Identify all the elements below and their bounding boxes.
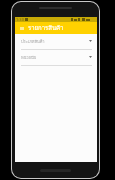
staticText: 1:30 xyxy=(16,17,24,22)
button[interactable]: Menu xyxy=(20,26,24,30)
button[interactable]: ประเภทสินค้า xyxy=(15,34,97,50)
staticText: ประเภทสินค้า xyxy=(21,38,45,44)
staticText: หน่วยนับ xyxy=(21,54,37,60)
staticText: รายการสินค้า xyxy=(28,23,64,33)
button[interactable]: หน่วยนับ xyxy=(15,50,97,66)
